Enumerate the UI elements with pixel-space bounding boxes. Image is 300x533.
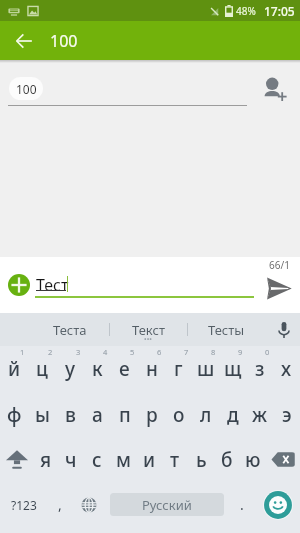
staticText: щ xyxy=(224,356,242,382)
button[interactable]: щ xyxy=(219,346,246,392)
staticText: ш xyxy=(197,356,215,382)
button[interactable]: Shift xyxy=(0,437,33,482)
staticText: , xyxy=(58,495,62,514)
button[interactable]: п xyxy=(111,392,138,437)
staticText: м xyxy=(116,447,131,473)
staticText: 100 xyxy=(16,81,37,97)
staticText: 9 xyxy=(238,347,243,357)
staticText: о xyxy=(173,402,185,428)
staticText: ы xyxy=(35,402,50,428)
button[interactable]: с xyxy=(84,437,110,482)
staticText: э xyxy=(282,402,292,428)
staticText: в xyxy=(65,402,76,428)
staticText: п xyxy=(119,402,131,428)
button[interactable]: о xyxy=(165,392,192,437)
button[interactable]: . xyxy=(228,482,256,527)
staticText: ф xyxy=(7,402,22,428)
button[interactable]: , xyxy=(48,482,72,527)
button[interactable]: Текст xyxy=(109,313,187,346)
button[interactable]: Теста xyxy=(31,313,109,346)
staticText: и xyxy=(143,447,156,473)
button[interactable]: ц xyxy=(28,346,56,392)
staticText: 66/1 xyxy=(269,258,290,272)
button[interactable]: т xyxy=(162,437,188,482)
staticText: 1 xyxy=(20,347,25,357)
button[interactable]: ф xyxy=(0,392,28,437)
staticText: д xyxy=(227,402,239,428)
button[interactable]: Backspace xyxy=(266,437,300,482)
button[interactable]: Voice input xyxy=(269,313,299,346)
staticText: ц xyxy=(36,356,48,382)
staticText: с xyxy=(92,447,102,473)
button[interactable]: ?123 xyxy=(0,482,48,527)
staticText: Теста xyxy=(53,321,87,339)
staticText: ю xyxy=(245,447,261,473)
button[interactable]: й xyxy=(0,346,28,392)
button[interactable]: л xyxy=(192,392,219,437)
button[interactable]: р xyxy=(138,392,165,437)
staticText: е xyxy=(119,356,130,382)
button[interactable]: Русский xyxy=(110,493,224,516)
button[interactable]: м xyxy=(110,437,136,482)
button[interactable]: а xyxy=(84,392,111,437)
button[interactable]: е xyxy=(111,346,138,392)
button[interactable]: ж xyxy=(246,392,273,437)
button[interactable]: Тесты xyxy=(187,313,265,346)
staticText: ••• xyxy=(144,335,152,345)
button[interactable]: г xyxy=(165,346,192,392)
staticText: т xyxy=(170,447,180,473)
staticText: ж xyxy=(252,402,268,428)
staticText: Тест xyxy=(36,274,69,296)
button[interactable]: Emoji xyxy=(256,482,300,527)
button[interactable]: к xyxy=(84,346,111,392)
staticText: й xyxy=(8,356,21,382)
staticText: 8 xyxy=(211,347,216,357)
button[interactable]: з xyxy=(246,346,273,392)
staticText: 7 xyxy=(184,347,189,357)
staticText: к xyxy=(92,356,103,382)
staticText: б xyxy=(221,447,233,473)
button[interactable]: в xyxy=(56,392,84,437)
staticText: 48% xyxy=(236,4,256,18)
button[interactable]: Back xyxy=(0,21,48,60)
button[interactable]: ы xyxy=(28,392,56,437)
button[interactable]: Add attachment xyxy=(8,274,30,296)
staticText: у xyxy=(65,356,76,382)
staticText: 2 xyxy=(48,347,53,357)
staticText: ч xyxy=(65,447,77,473)
button[interactable]: ь xyxy=(188,437,214,482)
button[interactable]: у xyxy=(56,346,84,392)
button[interactable]: б xyxy=(214,437,240,482)
staticText: 4 xyxy=(103,347,108,357)
staticText: Тесты xyxy=(208,321,245,339)
button[interactable]: д xyxy=(219,392,246,437)
staticText: 0 xyxy=(265,347,270,357)
button[interactable]: э xyxy=(273,392,300,437)
staticText: р xyxy=(146,402,158,428)
button[interactable]: я xyxy=(33,437,58,482)
staticText: г xyxy=(174,356,183,382)
button[interactable]: Add contact xyxy=(263,72,295,104)
staticText: л xyxy=(200,402,212,428)
staticText: 100 xyxy=(50,30,78,52)
button[interactable]: ю xyxy=(240,437,266,482)
staticText: а xyxy=(92,402,103,428)
button[interactable]: х xyxy=(273,346,300,392)
staticText: 17:05 xyxy=(264,3,295,19)
staticText: Текст xyxy=(132,321,165,339)
button[interactable]: Send xyxy=(263,272,295,304)
staticText: я xyxy=(40,447,52,473)
staticText: н xyxy=(146,356,158,382)
button[interactable]: 100 xyxy=(9,77,43,100)
button[interactable]: Change language xyxy=(72,482,106,527)
button[interactable]: и xyxy=(136,437,162,482)
staticText: ?123 xyxy=(11,497,37,513)
staticText: х xyxy=(281,356,292,382)
button[interactable]: ч xyxy=(58,437,84,482)
staticText: ь xyxy=(196,447,207,473)
button[interactable]: ш xyxy=(192,346,219,392)
button[interactable]: н xyxy=(138,346,165,392)
staticText: . xyxy=(240,495,244,514)
staticText: 3 xyxy=(76,347,81,357)
staticText: 5 xyxy=(130,347,135,357)
